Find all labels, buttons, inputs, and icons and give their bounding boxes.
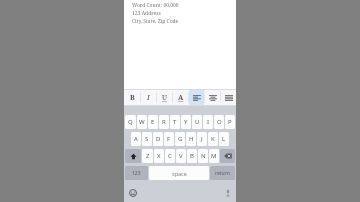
staticText: H (189, 135, 194, 143)
staticText: A (134, 135, 138, 143)
staticText: L (222, 135, 226, 143)
button[interactable]: H (186, 132, 196, 146)
button[interactable]: X (154, 149, 164, 163)
button[interactable]: return (210, 166, 235, 180)
staticText: N (201, 152, 206, 160)
button[interactable]: J (197, 132, 207, 146)
staticText: I (207, 118, 210, 126)
button[interactable]: A (131, 132, 141, 146)
button[interactable]: K (208, 132, 218, 146)
staticText: O (217, 118, 222, 126)
button[interactable]: M (209, 149, 219, 163)
staticText: A (178, 93, 184, 103)
button[interactable]: Y (181, 115, 191, 129)
staticText: W (139, 118, 145, 126)
staticText: space (172, 170, 187, 177)
button[interactable]: Bold (124, 90, 140, 105)
button[interactable]: E (148, 115, 158, 129)
button[interactable]: Shift (125, 149, 141, 163)
staticText: Word Count: 00,000 (132, 2, 179, 9)
button[interactable]: T (170, 115, 180, 129)
button[interactable]: V (176, 149, 186, 163)
staticText: K (211, 135, 215, 143)
button[interactable]: Italic (141, 90, 156, 105)
staticText: G (178, 135, 183, 143)
button[interactable]: Align center (205, 90, 220, 105)
staticText: F (167, 135, 171, 143)
staticText: X (157, 152, 161, 160)
button[interactable]: List (221, 90, 236, 105)
button[interactable]: Emoji (127, 187, 138, 198)
button[interactable]: Z (142, 149, 153, 163)
button[interactable]: Align left (189, 90, 204, 105)
button[interactable]: F (164, 132, 174, 146)
staticText: R (162, 118, 166, 126)
button[interactable]: D (153, 132, 163, 146)
button[interactable]: P (225, 115, 235, 129)
staticText: Z (146, 152, 150, 160)
staticText: I (147, 93, 150, 103)
staticText: P (228, 118, 232, 126)
button[interactable]: Text color (173, 90, 188, 105)
button[interactable]: U (192, 115, 202, 129)
staticText: 123 Address (132, 10, 161, 17)
staticText: U (195, 118, 200, 126)
staticText: J (201, 135, 203, 143)
staticText: U (162, 93, 168, 103)
staticText: T (173, 118, 177, 126)
button[interactable]: R (159, 115, 169, 129)
button[interactable]: N (198, 149, 208, 163)
button[interactable]: B (187, 149, 197, 163)
staticText: B (190, 152, 194, 160)
staticText: D (156, 135, 161, 143)
button[interactable]: Underline (157, 90, 172, 105)
staticText: S (145, 135, 149, 143)
button[interactable]: Q (125, 115, 136, 129)
staticText: return (215, 170, 230, 177)
button[interactable]: C (165, 149, 175, 163)
staticText: Y (184, 118, 188, 126)
button[interactable]: Dictation (222, 187, 233, 198)
button[interactable]: 123 (125, 166, 148, 180)
button[interactable]: O (214, 115, 224, 129)
button[interactable]: I (203, 115, 213, 129)
button[interactable]: S (142, 132, 152, 146)
button[interactable]: W (137, 115, 147, 129)
button[interactable]: space (149, 166, 209, 180)
staticText: V (179, 152, 183, 160)
staticText: C (168, 152, 172, 160)
staticText: Q (128, 118, 133, 126)
staticText: M (211, 152, 217, 160)
staticText: B (130, 93, 135, 103)
button[interactable]: L (219, 132, 229, 146)
button[interactable]: G (175, 132, 185, 146)
button[interactable]: Backspace (220, 149, 235, 163)
staticText: E (151, 118, 155, 126)
staticText: 123 (132, 170, 141, 177)
staticText: City, State, Zip Code (132, 18, 179, 25)
